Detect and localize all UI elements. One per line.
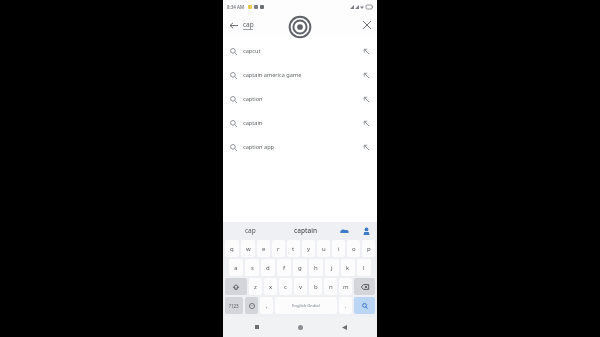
staticText: j	[331, 264, 333, 272]
staticText: cap	[243, 20, 254, 29]
staticText: ?123	[229, 303, 239, 309]
staticText: ,	[266, 302, 268, 309]
staticText: q	[230, 245, 234, 253]
button[interactable]: caption	[223, 87, 377, 111]
button[interactable]: i	[332, 240, 345, 257]
button[interactable]: g	[293, 259, 307, 276]
button[interactable]: h	[309, 259, 323, 276]
staticText: captain	[243, 119, 263, 127]
button[interactable]: q	[225, 240, 239, 257]
staticText: d	[266, 264, 270, 272]
button[interactable]: y	[302, 240, 315, 257]
button[interactable]: p	[362, 240, 375, 257]
button[interactable]: r	[272, 240, 285, 257]
button[interactable]: f	[277, 259, 291, 276]
button[interactable]: b	[309, 278, 322, 295]
button[interactable]: u	[317, 240, 330, 257]
staticText: z	[254, 283, 257, 291]
staticText: l	[363, 264, 365, 272]
button[interactable]: j	[325, 259, 339, 276]
staticText: caption app	[243, 143, 275, 151]
button[interactable]: Clipboard	[333, 222, 355, 239]
staticText: cap	[245, 226, 256, 235]
staticText: r	[277, 245, 280, 253]
staticText: y	[307, 245, 311, 253]
button[interactable]: ?123	[225, 297, 243, 314]
button[interactable]: s	[245, 259, 259, 276]
staticText: caption	[243, 95, 263, 103]
staticText: .	[345, 302, 347, 309]
button[interactable]: a	[229, 259, 243, 276]
staticText: k	[346, 264, 350, 272]
staticText: e	[262, 245, 266, 253]
staticText: o	[352, 245, 356, 253]
button[interactable]: Home	[290, 317, 310, 337]
staticText: v	[299, 283, 303, 291]
staticText: a	[234, 264, 238, 272]
button[interactable]: capcut	[223, 39, 377, 63]
button[interactable]: v	[294, 278, 307, 295]
button[interactable]: cap	[223, 222, 278, 239]
staticText: g	[298, 264, 302, 272]
button[interactable]: Shift	[225, 278, 247, 295]
button[interactable]: captain	[278, 222, 333, 239]
button[interactable]: captain america game	[223, 63, 377, 87]
staticText: f	[283, 264, 286, 272]
button[interactable]: caption app	[223, 135, 377, 159]
staticText: n	[329, 283, 333, 291]
staticText: captain	[294, 226, 317, 235]
button[interactable]: Screen recorder	[287, 14, 313, 40]
staticText: b	[314, 283, 318, 291]
button[interactable]: w	[241, 240, 255, 257]
button[interactable]: k	[341, 259, 355, 276]
staticText: u	[322, 245, 326, 253]
button[interactable]: .	[339, 297, 352, 314]
button[interactable]: Clear	[357, 15, 377, 35]
button[interactable]: captain	[223, 111, 377, 135]
button[interactable]: Recents	[247, 317, 267, 337]
button[interactable]: Back	[223, 15, 243, 35]
button[interactable]: Back	[334, 317, 354, 337]
staticText: x	[269, 283, 273, 291]
button[interactable]: l	[357, 259, 371, 276]
staticText: s	[251, 264, 254, 272]
button[interactable]: o	[347, 240, 360, 257]
button[interactable]: English (India)	[275, 297, 337, 314]
button[interactable]: e	[257, 240, 270, 257]
staticText: m	[343, 283, 349, 291]
button[interactable]: Backspace	[354, 278, 375, 295]
staticText: t	[292, 245, 295, 253]
button[interactable]: t	[287, 240, 300, 257]
button[interactable]: z	[249, 278, 262, 295]
button[interactable]: ,	[260, 297, 273, 314]
staticText: p	[367, 245, 371, 253]
staticText: English (India)	[292, 303, 320, 309]
button[interactable]: m	[339, 278, 352, 295]
button[interactable]: n	[324, 278, 337, 295]
button[interactable]: d	[261, 259, 275, 276]
staticText: w	[246, 245, 251, 253]
button[interactable]: x	[264, 278, 277, 295]
button[interactable]: Emoji	[245, 297, 258, 314]
staticText: 8:34 AM	[227, 4, 245, 10]
staticText: h	[314, 264, 318, 272]
staticText: capcut	[243, 47, 261, 55]
button[interactable]: c	[279, 278, 292, 295]
button[interactable]: Search	[354, 297, 375, 314]
staticText: captain america game	[243, 71, 302, 79]
staticText: c	[284, 283, 287, 291]
button[interactable]: Voice input	[355, 222, 377, 239]
staticText: i	[338, 245, 340, 253]
